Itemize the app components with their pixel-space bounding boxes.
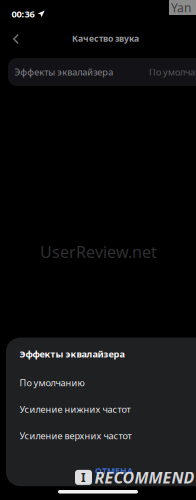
staticText: Усиление нижних частот — [19, 403, 130, 415]
staticText: Yan — [171, 0, 191, 16]
staticText: По умолчанию — [19, 376, 84, 389]
button[interactable]: Усиление нижних частот — [6, 396, 196, 422]
staticText: Качество звука — [72, 32, 139, 44]
staticText: Усиление верхних частот — [19, 429, 131, 442]
button[interactable]: Усиление верхних частот — [6, 422, 196, 449]
staticText: По умолчанию — [149, 66, 196, 78]
button[interactable]: По умолчанию — [6, 369, 196, 396]
button[interactable]: ОТМЕНА — [6, 460, 196, 482]
button[interactable]: Эффекты эквалайзера — [8, 58, 196, 86]
staticText: UserReview.net — [40, 241, 157, 263]
button[interactable]: Назад — [4, 28, 28, 50]
staticText: Эффекты эквалайзера — [14, 66, 113, 78]
staticText: I — [81, 469, 86, 485]
staticText: Эффекты эквалайзера — [19, 348, 124, 360]
staticText: ОТМЕНА — [95, 465, 133, 477]
staticText: 00:36 — [11, 7, 34, 20]
staticText: RECOMMEND — [94, 466, 194, 488]
